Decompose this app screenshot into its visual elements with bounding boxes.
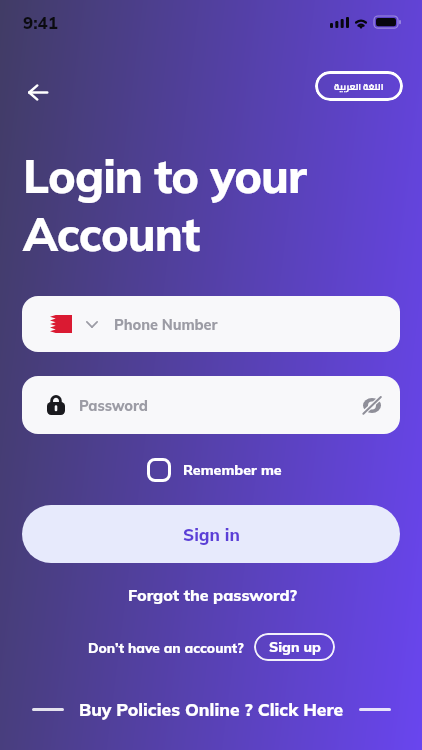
button[interactable]: Forgot the password? [128,585,298,605]
button[interactable]: Password [22,376,400,434]
button[interactable]: Buy Policies Online ? Click Here [79,698,344,720]
staticText: اللغة العربية [334,78,384,95]
staticText: 9:41 [23,12,59,33]
button[interactable]: Remember me [147,458,282,482]
button[interactable]: Sign in [22,505,400,563]
staticText: Remember me [183,461,282,479]
staticText: Login to your Account [23,147,307,263]
button[interactable]: Show password [359,392,385,418]
button[interactable]: Back [18,72,58,112]
button[interactable]: اللغة العربية [315,71,403,101]
staticText: Password [79,396,148,414]
button[interactable]: Phone Number [22,296,400,352]
staticText: Don’t have an account? [88,639,244,656]
staticText: Sign up [269,638,321,656]
staticText: Sign in [183,524,240,545]
button[interactable]: Sign up [254,633,335,661]
staticText: Phone Number [114,315,218,333]
